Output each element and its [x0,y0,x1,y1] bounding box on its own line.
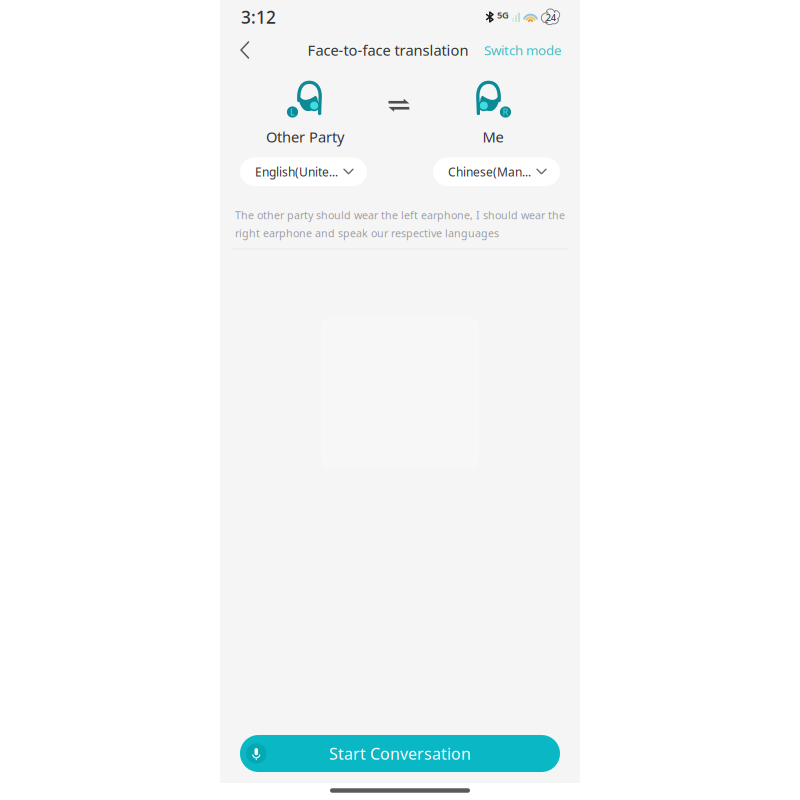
staticText: Me [482,127,503,146]
staticText: Start Conversation [329,743,471,764]
button[interactable]: Back [229,34,261,66]
button[interactable]: Start Conversation [240,735,560,772]
staticText: 3:12 [241,5,276,28]
staticText: R [502,106,508,118]
staticText: Other Party [266,127,344,146]
staticText: Switch mode [484,41,562,59]
staticText: L [290,106,295,118]
staticText: right earphone and speak our respective … [235,226,499,240]
button[interactable]: Chinese(Man... [433,157,560,186]
staticText: Chinese(Man... [448,164,531,180]
staticText: The other party should wear the left ear… [235,208,565,222]
staticText: 5G [497,9,509,21]
staticText: 24 [546,11,556,24]
staticText: Face-to-face translation [307,40,468,60]
button[interactable]: English(Unite... [240,157,367,186]
button[interactable]: Switch mode [481,34,565,66]
staticText: English(Unite... [255,164,338,180]
